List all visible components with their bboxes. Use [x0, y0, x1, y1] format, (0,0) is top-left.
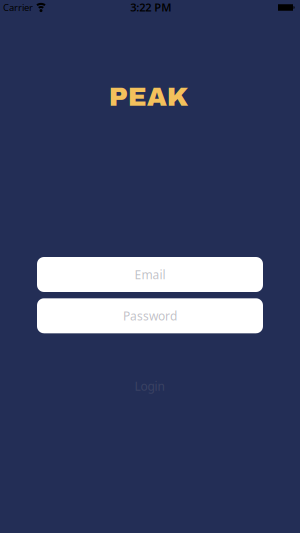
staticText: Login — [134, 378, 164, 394]
staticText: Carrier — [3, 1, 33, 14]
staticText: Password — [123, 308, 177, 324]
staticText: Email — [134, 266, 165, 283]
staticText: 3:22 PM — [130, 0, 171, 15]
staticText: PEAK — [109, 83, 189, 111]
